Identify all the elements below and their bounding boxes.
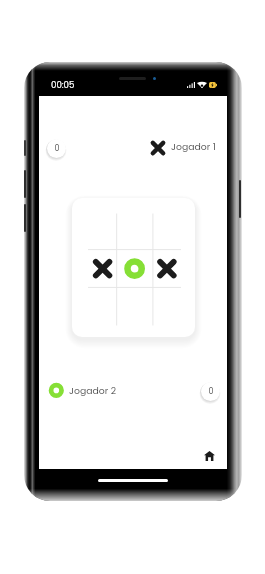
staticText: Jogador 2: [69, 384, 116, 397]
button[interactable]: Home: [197, 444, 221, 468]
button[interactable]: 0: [47, 139, 66, 158]
staticText: Jogador 1: [171, 140, 216, 153]
button[interactable]: Jogador 2: [48, 381, 116, 399]
button[interactable]: Jogador 1: [150, 137, 216, 155]
button[interactable]: 0: [201, 382, 220, 401]
staticText: 0: [54, 143, 60, 154]
staticText: 00:05: [51, 79, 75, 91]
button[interactable]: [72, 198, 195, 337]
staticText: 0: [208, 386, 214, 397]
